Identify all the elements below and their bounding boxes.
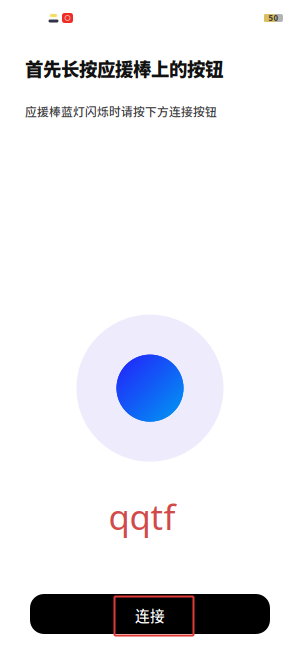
staticText: 首先长按应援棒上的按钮	[25, 55, 223, 82]
staticText: 连接	[135, 604, 165, 626]
staticText: 应援棒蓝灯闪烁时请按下方连接按钮	[25, 103, 217, 120]
button[interactable]: 连接	[30, 594, 270, 634]
staticText: qqtf	[108, 494, 175, 540]
staticText: 50	[268, 13, 278, 23]
